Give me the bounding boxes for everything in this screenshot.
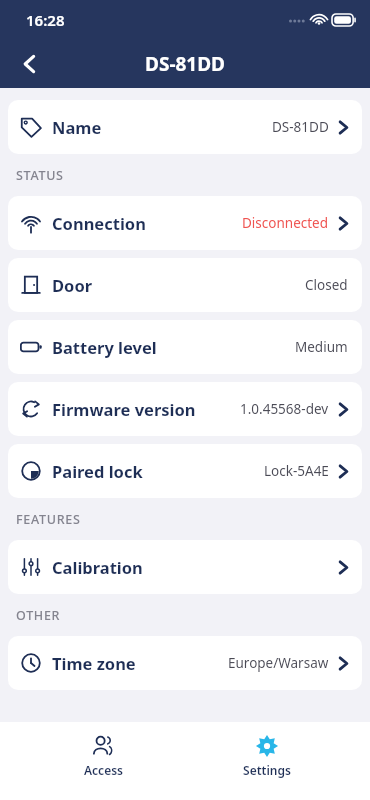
staticText: Access xyxy=(84,762,123,778)
staticText: STATUS xyxy=(16,167,64,184)
staticText: Settings xyxy=(243,762,291,778)
button[interactable]: Back xyxy=(8,42,52,86)
button[interactable]: Settings xyxy=(207,730,327,782)
staticText: Firmware version xyxy=(52,398,196,420)
button[interactable]: Battery level xyxy=(8,320,362,374)
button[interactable]: Time zone xyxy=(8,636,362,690)
staticText: Medium xyxy=(295,338,348,356)
staticText: Europe/Warsaw xyxy=(228,654,329,672)
staticText: Connection xyxy=(52,212,146,234)
staticText: Closed xyxy=(305,276,348,294)
button[interactable]: Calibration xyxy=(8,540,362,594)
staticText: DS-81DD xyxy=(272,118,329,136)
staticText: Paired lock xyxy=(52,460,143,482)
staticText: FEATURES xyxy=(16,511,81,528)
button[interactable]: Door xyxy=(8,258,362,312)
button[interactable]: Paired lock xyxy=(8,444,362,498)
staticText: Lock-5A4E xyxy=(264,462,329,480)
staticText: Door xyxy=(52,274,93,296)
staticText: OTHER xyxy=(16,607,61,624)
button[interactable]: Firmware version xyxy=(8,382,362,436)
button[interactable]: Access xyxy=(43,730,163,782)
staticText: Time zone xyxy=(52,652,136,674)
staticText: 16:28 xyxy=(26,10,65,30)
staticText: 1.0.45568-dev xyxy=(240,400,329,418)
staticText: Disconnected xyxy=(242,214,329,232)
staticText: Calibration xyxy=(52,556,143,578)
button[interactable]: Name xyxy=(8,100,362,154)
staticText: Battery level xyxy=(52,336,157,358)
staticText: Name xyxy=(52,116,102,138)
button[interactable]: Connection xyxy=(8,196,362,250)
staticText: DS-81DD xyxy=(145,51,226,77)
